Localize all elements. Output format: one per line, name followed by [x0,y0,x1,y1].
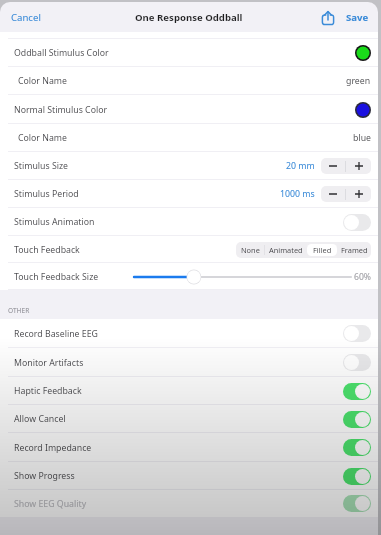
button[interactable]: On [343,439,371,456]
button[interactable]: Share [318,7,338,27]
button[interactable]: Off [343,325,371,342]
staticText: None [241,245,260,255]
button[interactable]: Decrease [321,186,345,202]
staticText: Color Name [18,132,67,144]
staticText: green [346,75,371,87]
button[interactable]: Record Impedance [0,433,378,462]
button[interactable]: Monitor Artifacts [0,348,378,377]
button[interactable]: Off [343,354,371,371]
button[interactable]: Off [343,214,371,231]
button[interactable]: On [343,468,371,485]
button[interactable]: Decrease [321,158,345,174]
button[interactable]: Animated [265,244,307,256]
staticText: One Response Oddball [135,11,243,24]
staticText: Filled [313,245,332,255]
staticText: 1000 ms [280,188,315,200]
button[interactable]: Increase [346,186,371,202]
staticText: blue [353,132,371,144]
button[interactable]: Color Name [0,67,378,95]
button[interactable]: Stimulus Animation [0,208,378,236]
button[interactable]: Haptic Feedback [0,377,378,405]
staticText: OTHER [8,306,30,315]
staticText: 60% [354,271,371,283]
staticText: Cancel [11,11,41,24]
button[interactable]: Increase [346,158,371,174]
staticText: Record Baseline EEG [14,328,98,340]
staticText: Stimulus Size [14,160,69,172]
button[interactable]: Color Name [0,124,378,152]
button[interactable]: Filled [307,244,337,256]
staticText: Show Progress [14,470,75,482]
staticText: Animated [269,245,303,255]
staticText: Show EEG Quality [14,498,87,510]
button[interactable]: Oddball Stimulus Color [0,39,378,67]
button[interactable]: On [343,411,371,428]
staticText: Allow Cancel [14,413,66,425]
button[interactable]: Show EEG Quality [0,490,378,517]
button[interactable]: Stimulus Period [0,180,378,208]
staticText: Touch Feedback [14,244,80,256]
button[interactable]: Framed [337,244,371,256]
button[interactable]: Cancel [7,7,45,28]
button[interactable]: On [343,383,371,400]
staticText: Stimulus Animation [14,216,95,228]
staticText: Color Name [18,75,67,87]
button[interactable]: Touch Feedback Size [0,263,378,290]
button[interactable]: Stimulus Size [0,152,378,180]
staticText: Framed [341,245,368,255]
button[interactable]: Show Progress [0,462,378,490]
button[interactable]: Record Baseline EEG [0,319,378,348]
staticText: Normal Stimulus Color [14,104,108,116]
staticText: Record Impedance [14,442,92,454]
button[interactable]: On [343,495,371,512]
staticText: Oddball Stimulus Color [14,47,109,59]
staticText: Save [346,11,369,24]
staticText: Monitor Artifacts [14,357,84,369]
button[interactable]: None [236,244,265,256]
staticText: Haptic Feedback [14,385,82,397]
button[interactable]: Normal Stimulus Color [0,95,378,124]
staticText: Touch Feedback Size [14,271,99,283]
button[interactable]: Allow Cancel [0,405,378,433]
staticText: 20 mm [286,160,315,172]
staticText: Stimulus Period [14,188,79,200]
button[interactable]: Save [344,8,371,27]
button[interactable]: Touch Feedback [0,236,378,263]
